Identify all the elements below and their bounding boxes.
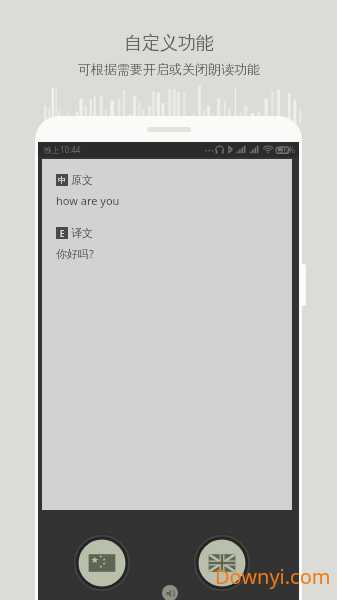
button[interactable]: English <box>193 534 251 592</box>
staticText: 你好吗? <box>56 246 94 261</box>
staticText: 可根据需要开启或关闭朗读功能 <box>78 61 260 77</box>
button[interactable]: Chinese <box>73 534 131 592</box>
staticText: 晚上10:44 <box>44 144 81 155</box>
button[interactable]: 中 <box>42 159 292 510</box>
staticText: Downyi.com <box>215 563 331 590</box>
staticText: 自定义功能 <box>124 32 214 55</box>
staticText: E <box>60 228 65 239</box>
staticText: 中 <box>58 175 66 185</box>
staticText: how are you <box>56 193 120 208</box>
staticText: 译文 <box>71 226 93 240</box>
button[interactable]: Toggle speech <box>162 585 178 600</box>
staticText: 原文 <box>71 173 93 187</box>
staticText: 36% <box>279 144 295 155</box>
